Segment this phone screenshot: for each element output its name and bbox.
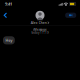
button[interactable]: Alex Chen (31, 8, 49, 25)
button[interactable]: Back (0, 10, 12, 20)
staticText: Today 11:19 (31, 30, 49, 34)
button[interactable]: FaceTime video call (65, 13, 76, 18)
staticText: iMessage (33, 28, 47, 32)
staticText: 9:41 (5, 1, 12, 7)
staticText: Hey (5, 38, 12, 43)
staticText: Alex Chen (31, 20, 47, 25)
